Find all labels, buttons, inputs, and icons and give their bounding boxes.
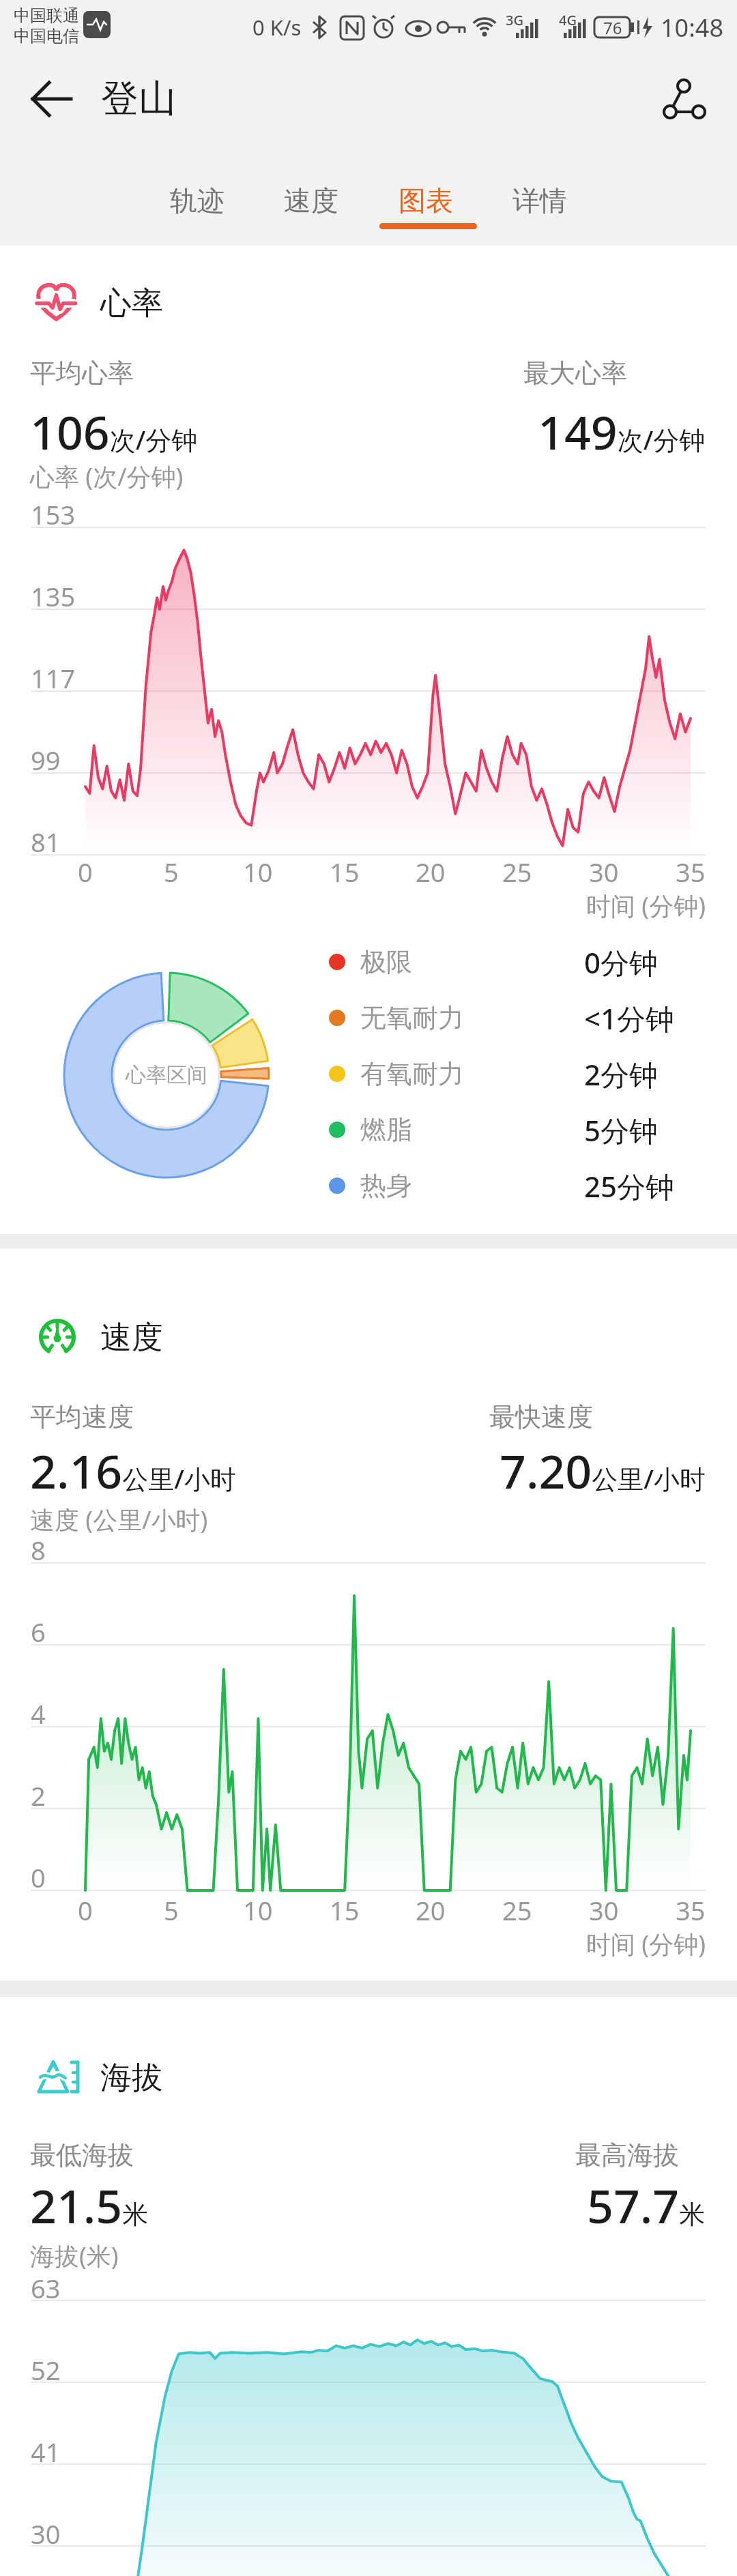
staticText: 35: [676, 1892, 706, 1928]
staticText: 20: [416, 1892, 446, 1928]
staticText: 无氧耐力: [360, 1001, 464, 1034]
staticText: 速度: [284, 184, 338, 218]
staticText: 详情: [512, 184, 567, 218]
staticText: 有氧耐力: [360, 1057, 464, 1090]
staticText: 海拔(米): [30, 2239, 119, 2272]
staticText: <1分钟: [584, 999, 675, 1038]
staticText: 76: [603, 16, 622, 39]
staticText: 7.20公里/小时: [500, 1439, 706, 1502]
staticText: 15: [330, 854, 360, 890]
staticText: 心率区间: [126, 1062, 207, 1088]
staticText: 海拔: [100, 2058, 163, 2098]
staticText: 41: [31, 2434, 61, 2470]
staticText: 最大心率: [523, 357, 627, 390]
staticText: 5: [164, 854, 179, 890]
staticText: 中国联通: [14, 5, 79, 26]
staticText: 21.5米: [30, 2173, 149, 2237]
staticText: 0 K/s: [252, 13, 302, 42]
staticText: 2.16公里/小时: [30, 1439, 236, 1502]
staticText: 57.7米: [587, 2173, 706, 2237]
staticText: 0: [31, 1860, 46, 1895]
staticText: 心率: [100, 284, 163, 323]
staticText: 10: [243, 854, 273, 890]
staticText: 30: [589, 854, 619, 890]
staticText: 平均心率: [30, 357, 134, 390]
button[interactable]: 速度: [175, 166, 448, 235]
staticText: 0: [78, 854, 93, 890]
staticText: 25: [502, 854, 532, 890]
staticText: 4G: [559, 11, 577, 29]
button[interactable]: 图表: [289, 166, 562, 235]
staticText: 149次/分钟: [538, 400, 706, 463]
staticText: 20: [416, 854, 446, 890]
staticText: 99: [31, 742, 61, 778]
staticText: 平均速度: [30, 1401, 134, 1433]
staticText: 最快速度: [489, 1401, 593, 1433]
staticText: 117: [31, 660, 76, 696]
staticText: 中国电信: [14, 26, 79, 46]
staticText: 心率 (次/分钟): [30, 460, 184, 493]
staticText: 15: [330, 1892, 360, 1928]
staticText: 速度: [100, 1318, 163, 1358]
staticText: 最高海拔: [575, 2139, 679, 2171]
staticText: 0: [78, 1892, 93, 1928]
button[interactable]: 详情: [403, 166, 676, 235]
staticText: 2分钟: [584, 1055, 659, 1094]
staticText: 25分钟: [584, 1167, 675, 1205]
staticText: 轨迹: [170, 184, 225, 218]
staticText: 图表: [399, 184, 453, 218]
button[interactable]: 轨迹: [61, 166, 334, 235]
staticText: 35: [676, 854, 706, 890]
button[interactable]: [20, 78, 82, 119]
staticText: 时间 (分钟): [586, 889, 706, 922]
staticText: 63: [31, 2270, 61, 2306]
staticText: 10: [243, 1892, 273, 1928]
staticText: 30: [589, 1892, 619, 1928]
staticText: 极限: [360, 946, 412, 978]
staticText: 燃脂: [360, 1113, 412, 1146]
staticText: 热身: [360, 1169, 412, 1202]
staticText: 81: [31, 824, 61, 860]
staticText: 8: [31, 1532, 46, 1568]
staticText: 0分钟: [584, 943, 659, 982]
staticText: 10:48: [661, 11, 724, 44]
staticText: 速度 (公里/小时): [30, 1503, 208, 1536]
staticText: 4: [31, 1696, 46, 1731]
staticText: 135: [31, 579, 76, 614]
staticText: 登山: [101, 75, 176, 122]
staticText: 25: [502, 1892, 532, 1928]
staticText: 153: [31, 497, 76, 532]
staticText: 2: [31, 1778, 46, 1813]
staticText: 30: [31, 2516, 61, 2551]
staticText: 6: [31, 1614, 46, 1650]
staticText: 3G: [506, 11, 523, 29]
staticText: 106次/分钟: [30, 400, 198, 463]
staticText: 5分钟: [584, 1111, 659, 1150]
staticText: 最低海拔: [30, 2139, 134, 2171]
button[interactable]: [650, 65, 718, 133]
staticText: 时间 (分钟): [586, 1927, 706, 1961]
staticText: 5: [164, 1892, 179, 1928]
staticText: 52: [31, 2352, 61, 2388]
